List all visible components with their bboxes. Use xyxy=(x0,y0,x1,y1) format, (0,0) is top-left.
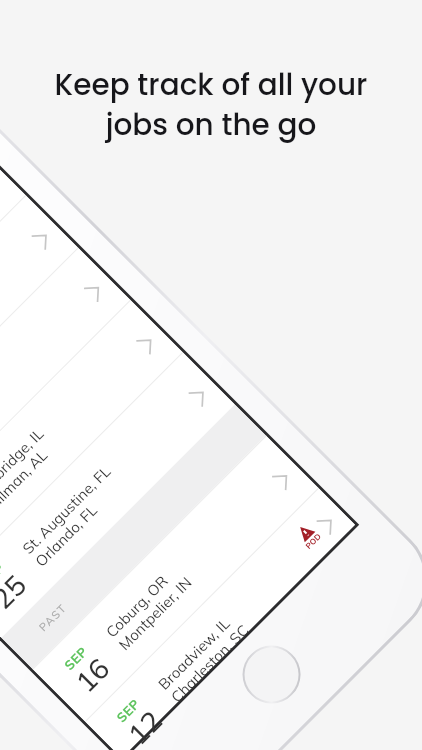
staticText: 12 xyxy=(120,703,169,750)
other: Proof of delivery missing xyxy=(293,521,323,551)
staticText: PAST xyxy=(36,600,70,634)
button[interactable]: SEP xyxy=(0,300,182,585)
staticText: SEP xyxy=(61,643,90,673)
button[interactable]: SEP xyxy=(0,352,235,638)
staticText: St. Augustine, FL Orlando, FL xyxy=(18,462,127,571)
staticText: POD xyxy=(303,531,323,551)
staticText: Fort Myers, FL Tampa, FL xyxy=(0,370,9,466)
staticText: Cambridge, IL Cullman, AL xyxy=(0,424,60,518)
staticText: 25 xyxy=(0,567,33,616)
staticText: 16 xyxy=(68,650,117,699)
button[interactable]: SEP xyxy=(32,435,318,721)
staticText: Keep track of all your jobs on the go xyxy=(0,64,422,145)
staticText: SEP xyxy=(0,560,7,590)
button[interactable]: SEP xyxy=(0,247,130,533)
button[interactable]: SEP xyxy=(0,195,78,481)
staticText: Broadview, IL Charleston, SC xyxy=(154,607,253,706)
staticText: Coburg, OR Montpelier, IN xyxy=(102,560,196,654)
button[interactable]: SEP xyxy=(85,488,355,750)
staticText: SEP xyxy=(113,696,143,725)
